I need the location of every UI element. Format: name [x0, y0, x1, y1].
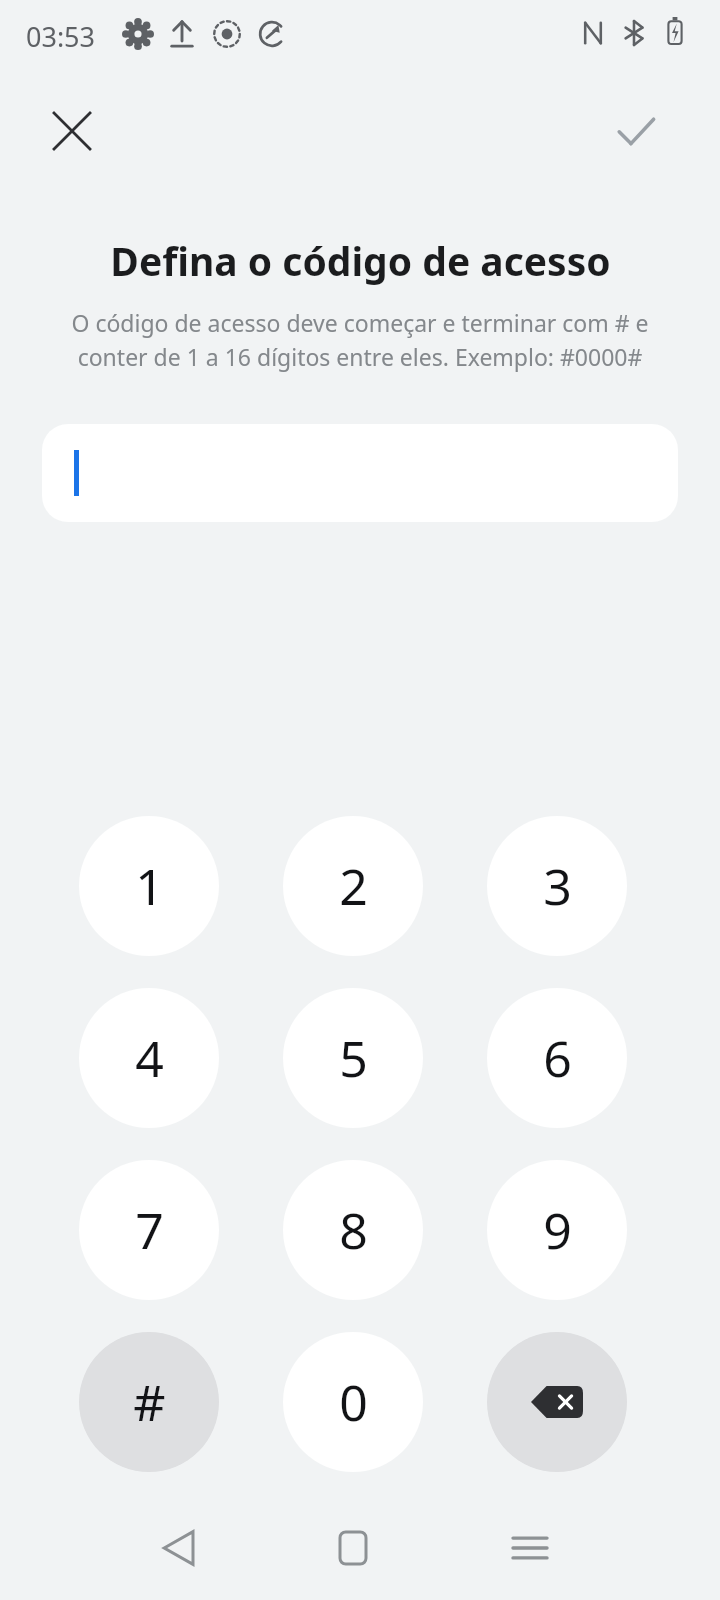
button[interactable]: 8 — [283, 1160, 423, 1300]
staticText: 3 — [543, 852, 572, 920]
button[interactable]: 5 — [283, 988, 423, 1128]
staticText: 5 — [339, 1024, 368, 1092]
button[interactable]: Recentes — [486, 1504, 574, 1592]
button[interactable]: 6 — [487, 988, 627, 1128]
button[interactable]: 2 — [283, 816, 423, 956]
button[interactable]: 7 — [79, 1160, 219, 1300]
staticText: 8 — [339, 1196, 368, 1264]
staticText: O código de acesso deve começar e termin… — [65, 307, 655, 372]
staticText: 6 — [543, 1024, 572, 1092]
button[interactable]: 0 — [283, 1332, 423, 1472]
button[interactable] — [42, 424, 678, 522]
button[interactable]: 3 — [487, 816, 627, 956]
staticText: Defina o código de acesso — [110, 234, 611, 287]
staticText: 0 — [339, 1368, 368, 1436]
button[interactable]: Fechar — [30, 89, 114, 173]
button[interactable]: Confirmar — [594, 89, 678, 173]
button[interactable]: Voltar — [134, 1504, 222, 1592]
button[interactable]: Apagar — [487, 1332, 627, 1472]
staticText: 4 — [135, 1024, 164, 1092]
button[interactable]: 1 — [79, 816, 219, 956]
staticText: 1 — [135, 852, 164, 920]
button[interactable]: # — [79, 1332, 219, 1472]
button[interactable]: 4 — [79, 988, 219, 1128]
staticText: 7 — [135, 1196, 164, 1264]
button[interactable]: Início — [309, 1504, 397, 1592]
staticText: 2 — [339, 852, 368, 920]
staticText: 9 — [543, 1196, 572, 1264]
button[interactable]: 9 — [487, 1160, 627, 1300]
staticText: 03:53 — [26, 18, 96, 55]
staticText: # — [133, 1368, 166, 1436]
